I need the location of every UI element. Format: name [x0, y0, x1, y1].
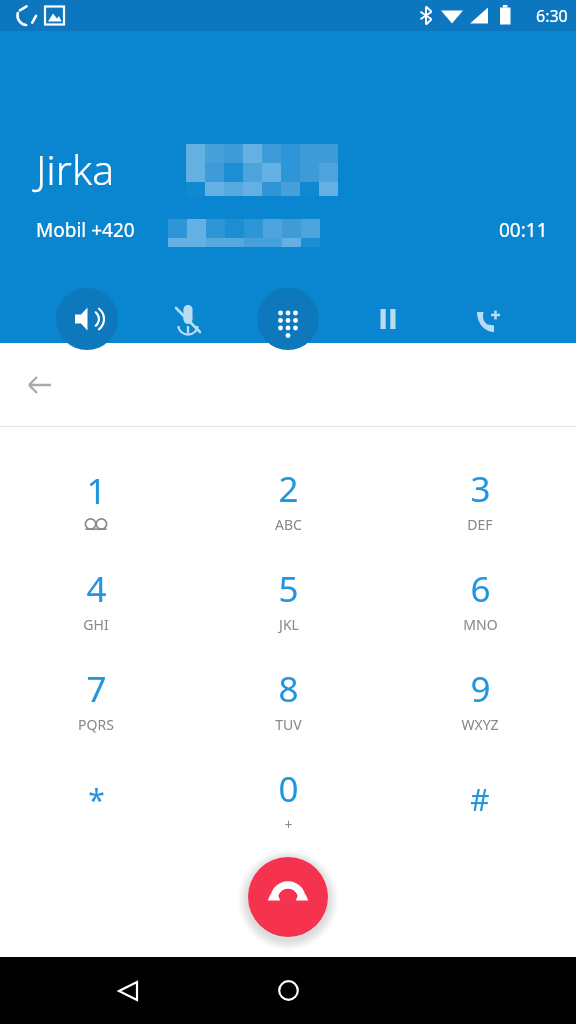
button[interactable]: 9 — [384, 649, 576, 749]
staticText: 7 — [86, 665, 107, 713]
button[interactable]: Unmute — [157, 288, 219, 350]
button[interactable]: Back — [80, 957, 176, 1024]
staticText: * — [88, 779, 105, 820]
staticText: TUV — [275, 715, 302, 734]
staticText: 6:30 — [536, 5, 568, 27]
staticText: 8 — [278, 665, 299, 713]
button[interactable]: 3 — [384, 449, 576, 549]
staticText: MNO — [463, 615, 498, 634]
button[interactable]: Speaker — [56, 288, 118, 350]
staticText: 00:11 — [499, 217, 548, 243]
button[interactable]: End call — [248, 857, 328, 937]
button[interactable]: # — [384, 749, 576, 849]
button[interactable]: 5 — [192, 549, 384, 649]
staticText: Mobil +420 — [36, 217, 135, 243]
staticText: Jirka — [36, 141, 115, 197]
staticText: DEF — [467, 515, 493, 534]
button[interactable]: 0 — [192, 749, 384, 849]
button[interactable]: 6 — [384, 549, 576, 649]
staticText: 5 — [278, 565, 299, 613]
staticText: PQRS — [78, 715, 114, 734]
button[interactable]: 8 — [192, 649, 384, 749]
button[interactable]: Hold call — [357, 288, 419, 350]
button[interactable]: 1 — [0, 449, 192, 549]
staticText: ABC — [275, 515, 302, 534]
staticText: 0 — [278, 765, 299, 813]
staticText: GHI — [83, 615, 109, 634]
button[interactable]: 4 — [0, 549, 192, 649]
staticText: JKL — [279, 615, 299, 634]
button[interactable]: Hide dialpad — [257, 288, 319, 350]
button[interactable]: * — [0, 749, 192, 849]
button[interactable]: 2 — [192, 449, 384, 549]
staticText: 3 — [470, 465, 491, 513]
staticText: 9 — [470, 665, 491, 713]
staticText: + — [284, 815, 293, 834]
staticText: 2 — [278, 465, 299, 513]
staticText: 1 — [86, 467, 107, 515]
staticText: WXYZ — [461, 715, 499, 734]
button[interactable]: Add call — [458, 288, 520, 350]
button[interactable]: Home — [240, 957, 336, 1024]
button[interactable]: 7 — [0, 649, 192, 749]
staticText: 6 — [470, 565, 491, 613]
button[interactable]: Back — [12, 357, 68, 413]
staticText: # — [470, 779, 490, 820]
staticText: 4 — [86, 565, 107, 613]
